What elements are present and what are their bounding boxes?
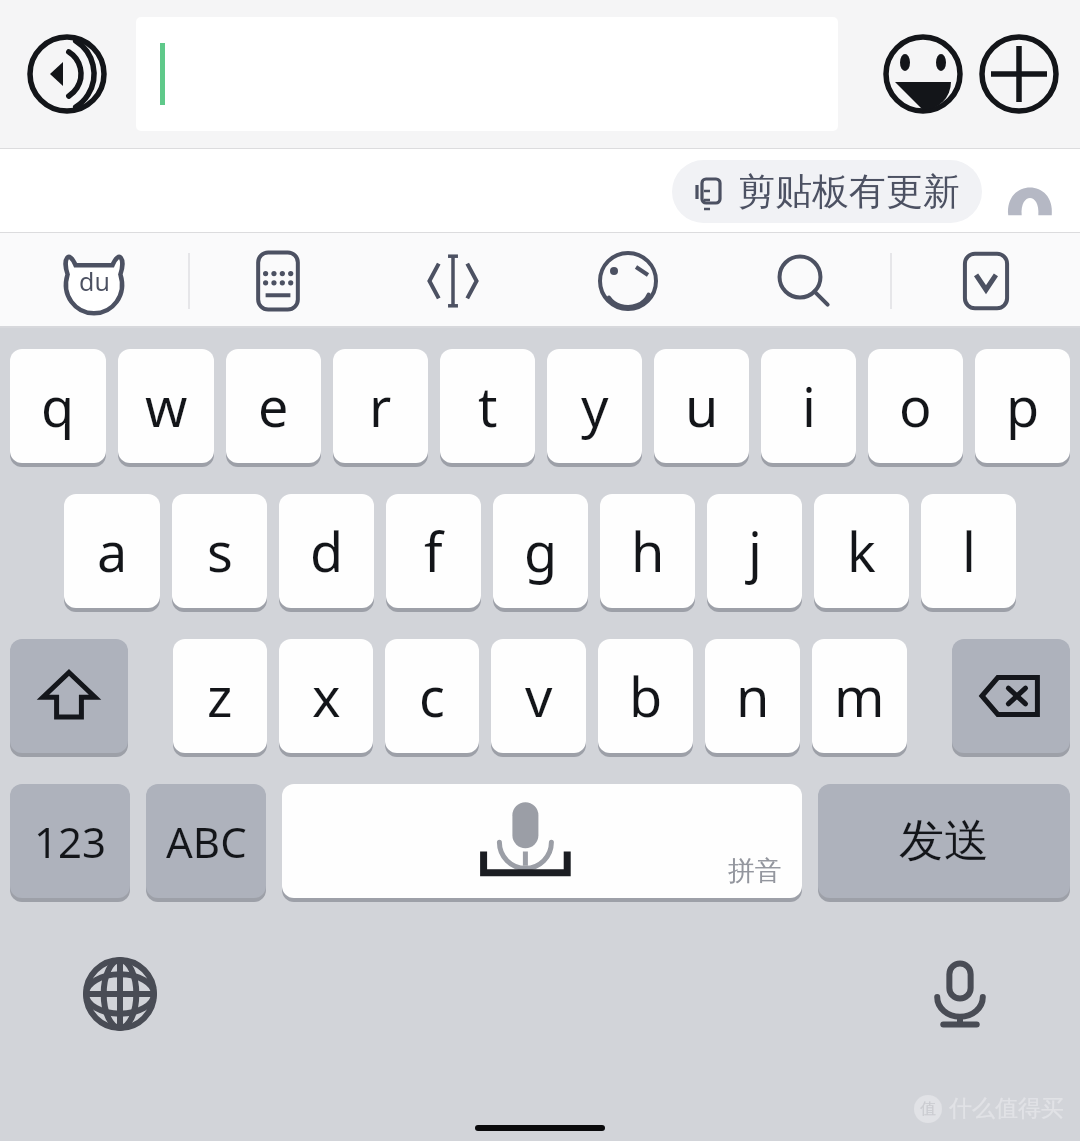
staticText: a [97,514,128,588]
button[interactable]: Baidu input [0,233,188,328]
button[interactable]: i [761,349,856,463]
button[interactable]: s [172,494,267,608]
other: Backspace [952,639,1070,757]
staticText: o [899,369,932,443]
staticText: du [79,264,110,298]
button[interactable] [10,639,128,753]
button[interactable]: x [279,639,373,753]
staticText: z [207,659,233,733]
staticText: t [478,369,498,443]
staticText: y [581,369,609,443]
button[interactable]: p [975,349,1070,463]
button[interactable]: Add [978,33,1060,115]
button[interactable]: ABC [146,784,266,898]
button[interactable]: y [547,349,642,463]
button[interactable]: k [814,494,909,608]
button[interactable]: b [598,639,693,753]
button[interactable]: u [654,349,749,463]
staticText: g [524,514,558,588]
staticText: f [424,514,443,588]
button[interactable]: z [173,639,267,753]
staticText: d [310,514,344,588]
button[interactable]: o [868,349,963,463]
button[interactable]: g [493,494,588,608]
button[interactable]: Assistant [998,159,1062,223]
button[interactable]: 剪贴板有更新 [694,168,960,215]
staticText: 什么值得买 [949,1094,1064,1123]
staticText: 123 [34,813,107,870]
other: Shift [10,639,128,757]
button[interactable]: q [10,349,106,463]
staticText: 发送 [899,813,989,870]
button[interactable]: t [440,349,535,463]
button[interactable]: e [226,349,321,463]
staticText: s [207,514,233,588]
staticText: e [258,369,289,443]
button[interactable]: m [812,639,907,753]
staticText: p [1006,369,1040,443]
staticText: ABC [166,813,247,870]
button[interactable]: Keyboard layout [190,233,365,328]
staticText: i [802,369,816,443]
staticText: 值 [920,1099,936,1119]
button[interactable] [952,639,1070,753]
button[interactable]: d [279,494,374,608]
staticText: x [312,659,341,733]
staticText: k [847,514,876,588]
staticText: 剪贴板有更新 [738,168,960,215]
button[interactable]: f [386,494,481,608]
staticText: r [369,369,392,443]
button[interactable]: v [491,639,586,753]
button[interactable]: n [705,639,800,753]
staticText: l [962,514,976,588]
button[interactable]: 123 [10,784,130,898]
button[interactable]: j [707,494,802,608]
button[interactable]: c [385,639,479,753]
button[interactable]: w [118,349,214,463]
button[interactable]: Emoji [882,33,964,115]
button[interactable]: Search [715,233,890,328]
staticText: m [834,659,885,733]
staticText: b [629,659,663,733]
button[interactable]: a [64,494,160,608]
staticText: q [41,369,75,443]
staticText: c [419,659,445,733]
button[interactable]: l [921,494,1016,608]
button[interactable]: Voice input [27,34,107,114]
staticText: 拼音 [728,854,782,888]
button[interactable] [136,17,838,131]
staticText: j [748,514,762,588]
button[interactable]: 发送 [818,784,1070,898]
button[interactable]: Voice typing [840,934,1080,1054]
button[interactable]: Collapse keyboard [892,233,1080,328]
button[interactable]: r [333,349,428,463]
staticText: v [525,659,553,733]
staticText: n [736,659,770,733]
button[interactable]: Cursor move [365,233,540,328]
button[interactable]: Stickers [540,233,715,328]
button[interactable]: Space [282,784,802,898]
staticText: u [685,369,719,443]
button[interactable]: Switch language [0,934,240,1054]
staticText: w [145,369,188,443]
staticText: h [631,514,665,588]
button[interactable]: h [600,494,695,608]
